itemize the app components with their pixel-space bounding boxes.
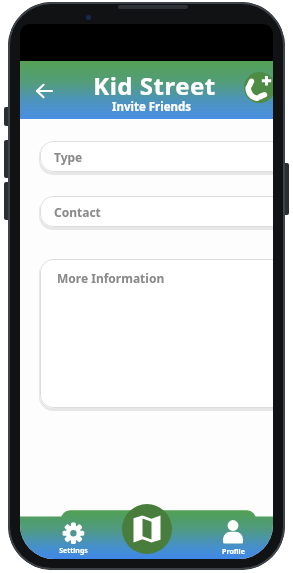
- button[interactable]: Settings: [48, 510, 99, 559]
- button[interactable]: [28, 77, 60, 105]
- button[interactable]: More Information: [40, 259, 273, 408]
- staticText: Kid Street: [28, 69, 273, 102]
- button[interactable]: Type: [40, 141, 273, 172]
- button[interactable]: [244, 72, 273, 103]
- staticText: Type: [54, 149, 83, 165]
- button[interactable]: Contact: [40, 196, 273, 227]
- staticText: More Information: [57, 270, 165, 286]
- staticText: Settings: [48, 546, 99, 556]
- staticText: Profile: [208, 547, 259, 557]
- button[interactable]: [122, 504, 172, 554]
- staticText: Invite Friends: [25, 99, 273, 115]
- staticText: Contact: [54, 204, 101, 220]
- button[interactable]: Profile: [208, 510, 259, 559]
